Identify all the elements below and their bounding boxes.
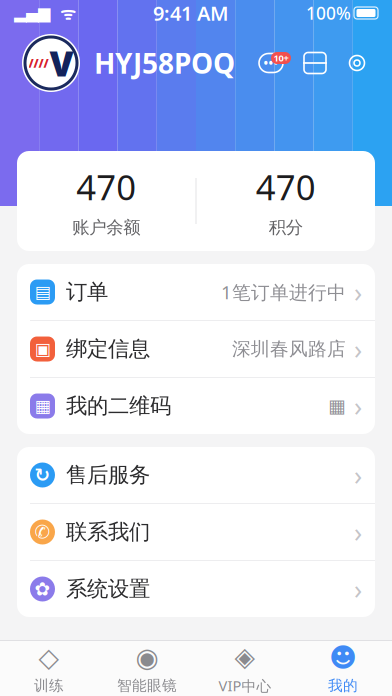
staticText: 10+ <box>273 52 288 64</box>
staticText: 训练 <box>34 677 64 695</box>
staticText: ◈ <box>234 642 255 672</box>
button[interactable]: ✿ <box>17 561 375 617</box>
staticText: 我的二维码 <box>66 393 171 419</box>
staticText: ᯤ <box>50 1 76 24</box>
staticText: //// <box>28 55 48 71</box>
staticText: ☻ <box>329 642 357 673</box>
staticText: 联系我们 <box>66 519 150 545</box>
staticText: › <box>354 388 362 424</box>
staticText: 470 <box>76 164 136 210</box>
staticText: ▦ <box>34 396 50 416</box>
button[interactable]: ✆ <box>17 504 375 560</box>
button[interactable]: ◈ <box>196 641 294 696</box>
staticText: 账户余额 <box>72 217 140 238</box>
button[interactable]: ▣ <box>17 321 375 377</box>
button[interactable]: 消息 <box>256 50 286 76</box>
staticText: › <box>354 274 362 310</box>
staticText: › <box>354 514 362 550</box>
staticText: V <box>49 40 73 86</box>
staticText: ••• <box>263 55 278 71</box>
staticText: 100% <box>306 1 351 24</box>
staticText: 智能眼镜 <box>117 677 177 695</box>
staticText: ◉ <box>135 642 158 673</box>
staticText: 470 <box>256 164 316 210</box>
staticText: 绑定信息 <box>66 336 150 362</box>
staticText: VIP中心 <box>218 676 271 695</box>
staticText: ✿ <box>34 578 50 600</box>
staticText: ◇ <box>38 642 59 673</box>
staticText: 售后服务 <box>66 462 150 488</box>
staticText: 深圳春风路店 <box>232 337 346 360</box>
button[interactable]: ▦ <box>17 378 375 434</box>
staticText: ↻ <box>34 464 50 486</box>
staticText: ✆ <box>34 521 50 543</box>
button[interactable]: ▤ <box>17 264 375 320</box>
staticText: ▦ <box>328 395 346 417</box>
staticText: › <box>354 571 362 607</box>
staticText: ▤ <box>34 282 50 302</box>
staticText: 9:41 AM <box>153 0 229 26</box>
staticText: ▂▄▆ <box>14 4 50 22</box>
button[interactable]: 470 <box>17 151 195 251</box>
button[interactable]: 设置 <box>344 50 370 76</box>
staticText: 订单 <box>66 279 108 305</box>
button[interactable]: ◉ <box>98 641 196 696</box>
staticText: 系统设置 <box>66 576 150 602</box>
button[interactable]: ☻ <box>294 641 392 696</box>
staticText: ▣ <box>34 339 50 359</box>
button[interactable]: 扫一扫 <box>302 50 328 76</box>
staticText: › <box>354 457 362 493</box>
staticText: 1笔订单进行中 <box>221 280 346 304</box>
staticText: 我的 <box>328 677 358 695</box>
staticText: HYJ58POQ <box>94 44 235 82</box>
button[interactable]: 470 <box>196 151 375 251</box>
button[interactable]: ◇ <box>0 641 98 696</box>
staticText: 积分 <box>269 217 303 238</box>
staticText: › <box>354 331 362 367</box>
button[interactable]: ↻ <box>17 447 375 503</box>
